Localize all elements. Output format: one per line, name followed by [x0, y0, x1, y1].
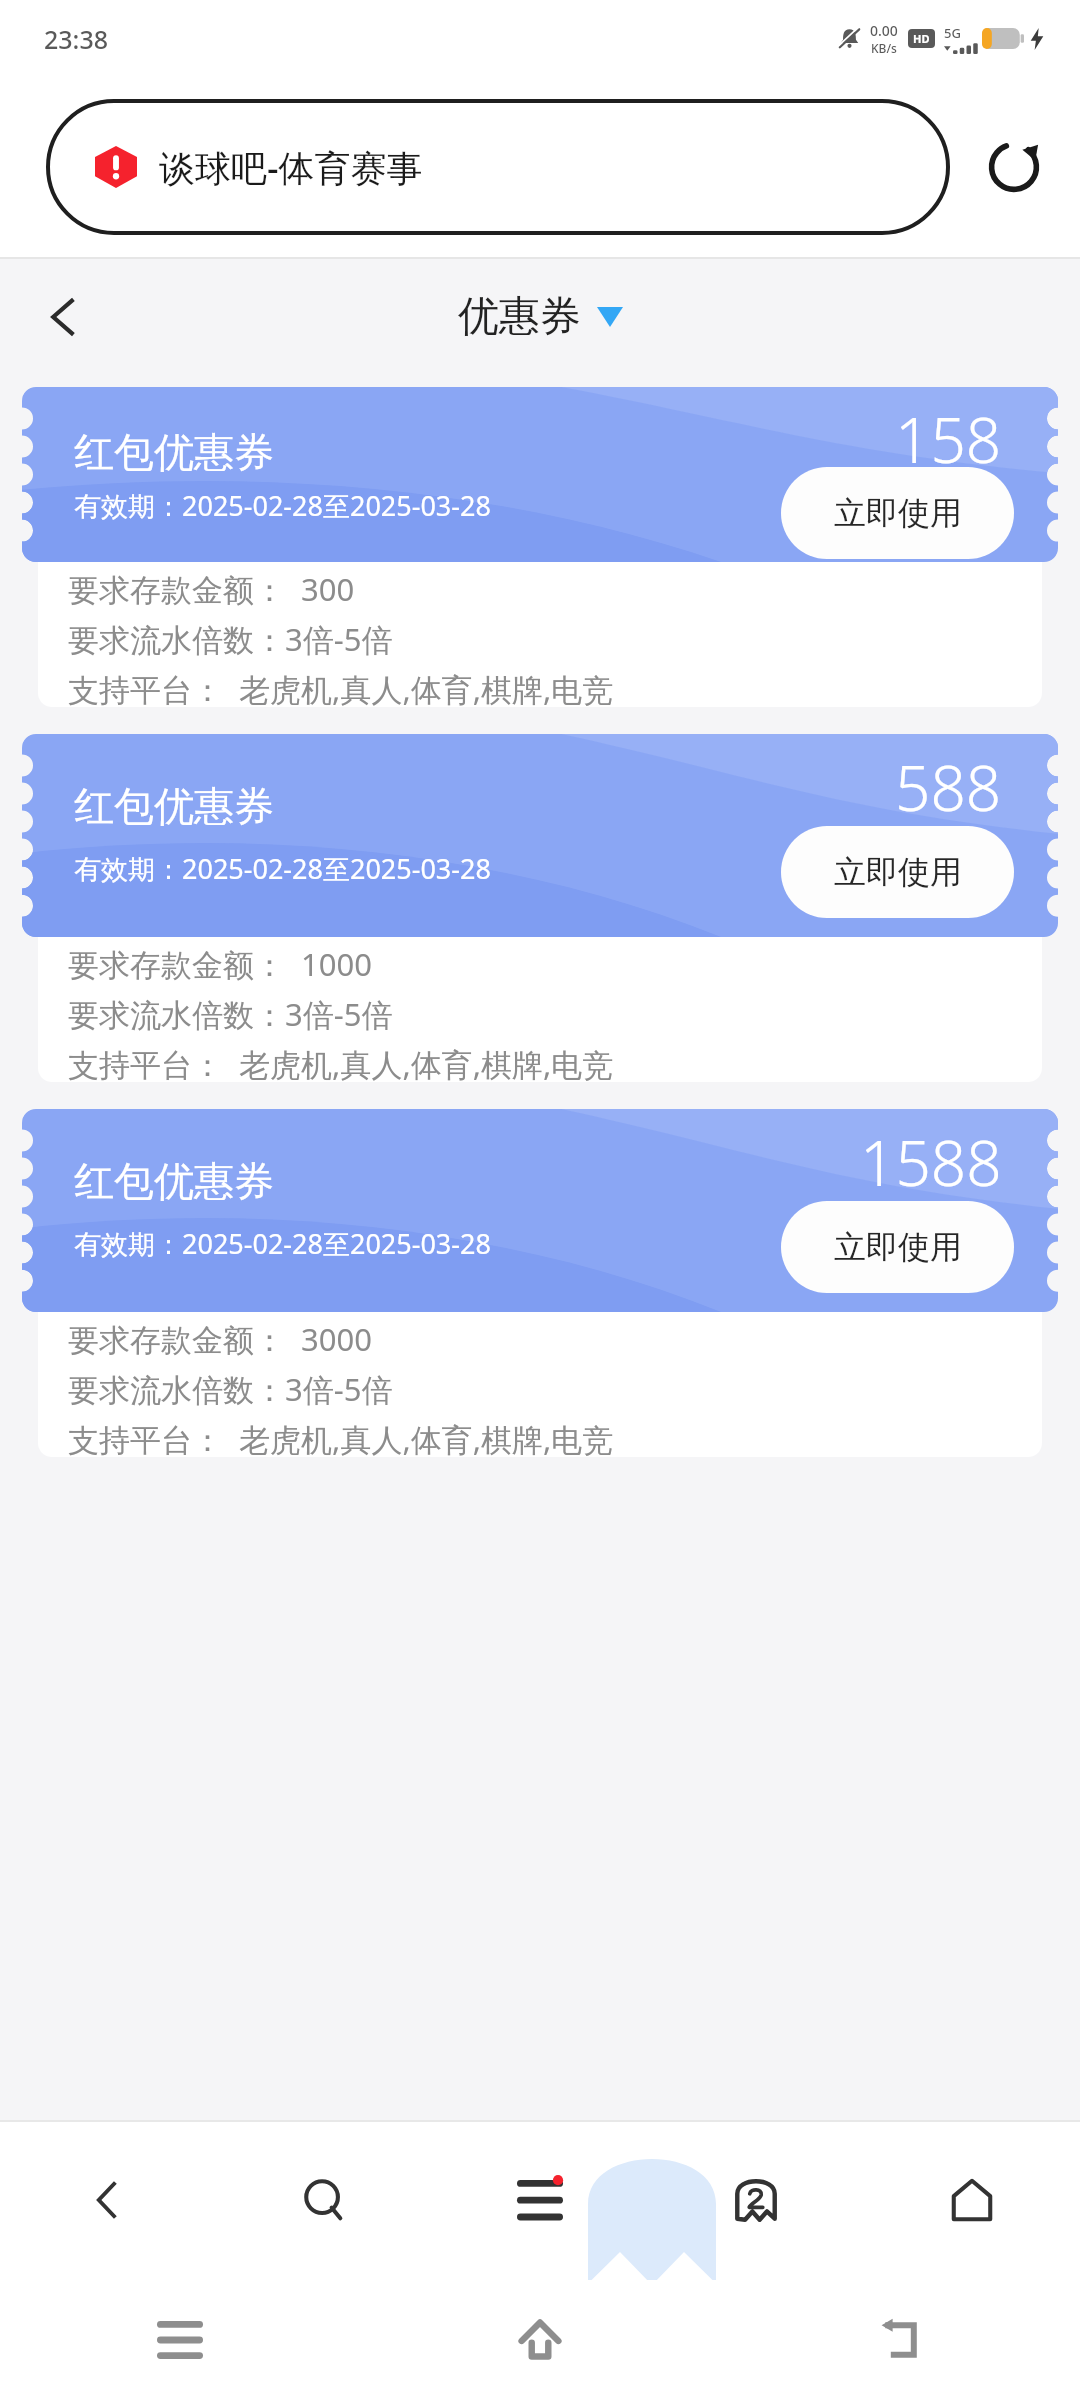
staticText: KB/s [871, 40, 897, 56]
staticText: 要求流水倍数：3倍-5倍 [68, 618, 393, 660]
staticText: 5G [944, 24, 961, 42]
staticText: 要求存款金额： 300 [68, 568, 355, 610]
staticText: 有效期：2025-02-28至2025-03-28 [74, 850, 491, 887]
button[interactable]: Back [720, 2280, 1080, 2400]
button[interactable]: 红包优惠券 [22, 1109, 1058, 1312]
staticText: 23:38 [44, 22, 109, 56]
staticText: 要求存款金额： 1000 [68, 943, 373, 985]
staticText: 支持平台： 老虎机,真人,体育,棋牌,电竞 [68, 668, 614, 707]
button[interactable]: 要求存款金额： 300 [38, 556, 1042, 707]
button[interactable]: Home [360, 2280, 720, 2400]
staticText: 有效期：2025-02-28至2025-03-28 [74, 487, 491, 524]
button[interactable]: 立即使用 [781, 467, 1014, 559]
staticText: 红包优惠券 [74, 781, 274, 831]
staticText: HD [913, 31, 930, 46]
button[interactable]: Home [864, 2120, 1080, 2280]
staticText: 立即使用 [834, 852, 962, 892]
staticText: 支持平台： 老虎机,真人,体育,棋牌,电竞 [68, 1043, 614, 1082]
button[interactable]: Recents [0, 2280, 360, 2400]
button[interactable]: Back [20, 272, 110, 362]
button[interactable]: Menu [432, 2120, 648, 2280]
button[interactable]: Reload [948, 101, 1080, 233]
staticText: 要求流水倍数：3倍-5倍 [68, 993, 393, 1035]
staticText: 红包优惠券 [74, 1156, 274, 1206]
button[interactable]: Tabs [648, 2120, 864, 2280]
staticText: 0.00 [870, 21, 898, 40]
staticText: 158 [895, 397, 1002, 481]
button[interactable]: 红包优惠券 [22, 734, 1058, 937]
staticText: 立即使用 [834, 1227, 962, 1267]
staticText: 优惠券 [458, 291, 581, 343]
staticText: 立即使用 [834, 493, 962, 533]
staticText: 要求流水倍数：3倍-5倍 [68, 1368, 393, 1410]
staticText: 588 [895, 745, 1002, 829]
button[interactable]: 要求存款金额： 1000 [38, 931, 1042, 1082]
button[interactable]: 立即使用 [781, 1201, 1014, 1293]
button[interactable]: 红包优惠券 [22, 387, 1058, 562]
staticText: 要求存款金额： 3000 [68, 1318, 373, 1360]
staticText: 谈球吧-体育赛事 [159, 143, 423, 192]
staticText: 支持平台： 老虎机,真人,体育,棋牌,电竞 [68, 1418, 614, 1457]
staticText: 红包优惠券 [74, 427, 274, 477]
staticText: 有效期：2025-02-28至2025-03-28 [74, 1225, 491, 1262]
button[interactable]: 谈球吧-体育赛事 [48, 101, 948, 233]
staticText: 1588 [860, 1120, 1002, 1204]
button[interactable]: 要求存款金额： 3000 [38, 1306, 1042, 1457]
button[interactable]: 立即使用 [781, 826, 1014, 918]
button[interactable]: Search [216, 2120, 432, 2280]
button[interactable]: Back [0, 2120, 216, 2280]
button[interactable]: 优惠券 [458, 291, 623, 343]
